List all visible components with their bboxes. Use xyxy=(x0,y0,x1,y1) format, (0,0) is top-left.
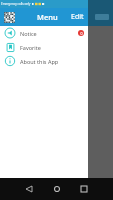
staticText: 0 xyxy=(80,31,83,36)
staticText: Menu xyxy=(37,12,58,22)
button[interactable]: Edit xyxy=(67,8,88,26)
button[interactable]: Recents xyxy=(77,182,91,196)
staticText: Notice xyxy=(20,30,78,37)
staticText: Favorite xyxy=(20,44,84,51)
button[interactable]: Back xyxy=(22,182,36,196)
button[interactable]: About this App xyxy=(0,54,88,68)
staticText: About this App xyxy=(20,58,84,65)
button[interactable]: Favorite xyxy=(0,40,88,54)
staticText: Emergency calls only xyxy=(1,2,31,6)
staticText: Edit xyxy=(71,12,84,22)
button[interactable]: Home xyxy=(50,182,64,196)
button[interactable]: Notice xyxy=(0,26,88,40)
button[interactable]: App icon xyxy=(3,11,16,24)
